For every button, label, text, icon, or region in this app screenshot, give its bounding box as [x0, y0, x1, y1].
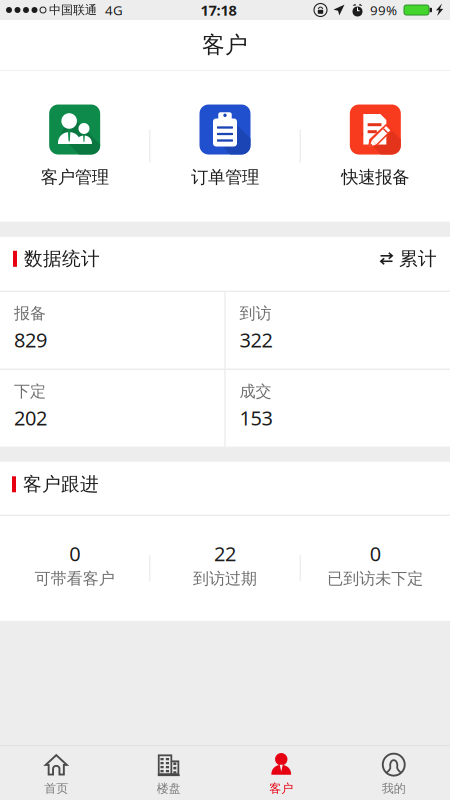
staticText: 首页 [44, 781, 68, 796]
button[interactable]: 累计 [380, 247, 437, 270]
staticText: 153 [239, 404, 272, 431]
staticText: 829 [14, 326, 47, 353]
staticText: 楼盘 [157, 781, 181, 796]
staticText: 0 [69, 540, 80, 567]
staticText: 客户管理 [41, 166, 109, 188]
staticText: 到访过期 [193, 569, 257, 588]
staticText: 已到访未下定 [327, 569, 423, 588]
staticText: 到访 [239, 304, 271, 323]
button[interactable]: 楼盘 [112, 746, 225, 800]
staticText: 快速报备 [341, 166, 409, 188]
staticText: 22 [214, 540, 236, 567]
staticText: 下定 [14, 382, 46, 401]
staticText: 客户 [269, 781, 293, 796]
staticText: 17:18 [200, 0, 236, 20]
staticText: 202 [14, 404, 47, 431]
staticText: 成交 [239, 382, 271, 401]
staticText: 可带看客户 [35, 569, 115, 588]
staticText: 订单管理 [191, 166, 259, 188]
staticText: 我的 [382, 781, 406, 796]
staticText: 0 [370, 540, 381, 567]
staticText: 4G [105, 1, 123, 19]
button[interactable]: 客户管理 [0, 104, 149, 188]
button[interactable]: 我的 [337, 746, 450, 800]
staticText: 累计 [399, 247, 437, 270]
button[interactable]: 客户 [225, 746, 337, 800]
staticText: 报备 [14, 304, 46, 323]
staticText: 客户 [202, 31, 248, 59]
button[interactable]: 订单管理 [150, 104, 300, 188]
staticText: 中国联通 [49, 3, 97, 17]
button[interactable]: 首页 [0, 746, 112, 800]
staticText: 99% [370, 1, 397, 19]
staticText: 客户跟进 [23, 473, 99, 496]
staticText: 数据统计 [24, 247, 100, 270]
staticText: 322 [239, 326, 272, 353]
button[interactable]: 快速报备 [301, 104, 450, 188]
